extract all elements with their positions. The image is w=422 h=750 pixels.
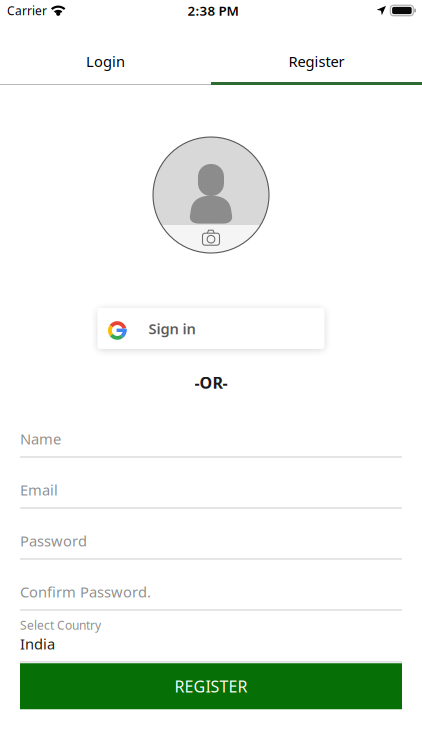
button[interactable]: Password bbox=[20, 505, 402, 556]
button[interactable]: Login bbox=[0, 21, 211, 85]
staticText: 2:38 PM bbox=[187, 2, 238, 19]
button[interactable]: Email bbox=[20, 454, 402, 505]
button[interactable]: Confirm Password. bbox=[20, 556, 402, 607]
staticText: Register bbox=[288, 51, 344, 71]
staticText: India bbox=[20, 634, 55, 653]
staticText: Password bbox=[20, 531, 87, 550]
staticText: -OR- bbox=[194, 372, 227, 393]
staticText: REGISTER bbox=[174, 676, 247, 697]
button[interactable]: Name bbox=[20, 403, 402, 454]
staticText: Login bbox=[86, 51, 125, 71]
button[interactable]: REGISTER bbox=[20, 663, 402, 709]
button[interactable]: Select Country bbox=[20, 607, 402, 658]
staticText: Confirm Password. bbox=[20, 582, 151, 601]
staticText: Name bbox=[20, 429, 61, 448]
staticText: Sign in bbox=[149, 319, 196, 338]
staticText: Email bbox=[20, 480, 58, 499]
button[interactable]: Register bbox=[211, 21, 422, 85]
staticText: Select Country bbox=[20, 617, 101, 633]
button[interactable]: Sign in bbox=[97, 308, 324, 349]
staticText: Carrier bbox=[7, 2, 47, 18]
button[interactable]: Change profile photo bbox=[153, 137, 269, 253]
